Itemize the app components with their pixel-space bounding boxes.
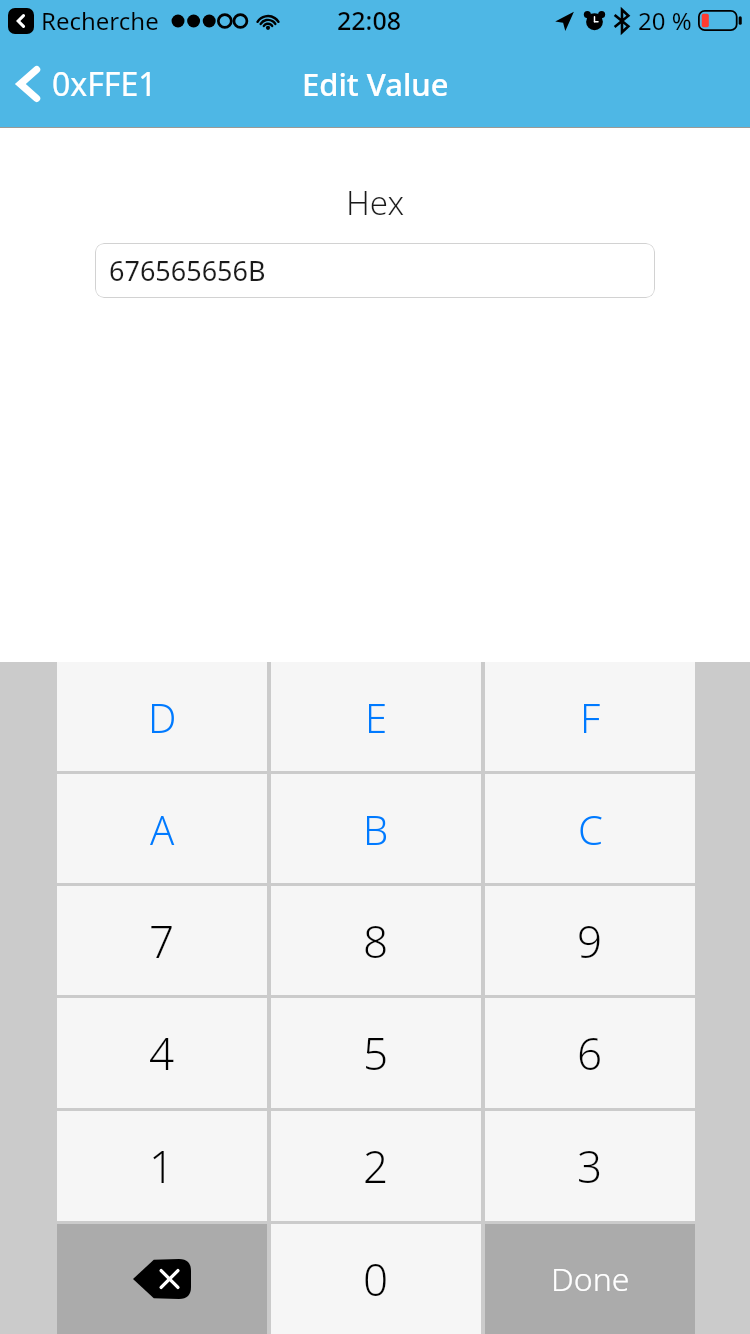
button[interactable]: 0 xyxy=(271,1224,481,1334)
staticText: 22:08 xyxy=(337,3,402,37)
staticText: 4 xyxy=(149,1023,175,1083)
button[interactable]: 5 xyxy=(271,998,481,1108)
button[interactable]: 6 xyxy=(485,998,695,1108)
staticText: 2 xyxy=(363,1136,389,1196)
button[interactable]: 9 xyxy=(485,886,695,995)
staticText: 1 xyxy=(149,1136,175,1196)
button[interactable]: F xyxy=(485,662,695,771)
button[interactable]: Done xyxy=(485,1224,695,1334)
button[interactable]: D xyxy=(57,662,267,771)
staticText: 8 xyxy=(363,911,389,971)
staticText: 3 xyxy=(577,1136,603,1196)
staticText: 20 % xyxy=(638,4,692,37)
staticText: C xyxy=(578,802,603,856)
staticText: F xyxy=(580,690,601,744)
staticText: Recherche xyxy=(41,4,159,37)
staticText: 7 xyxy=(149,911,175,971)
staticText: E xyxy=(365,690,388,744)
staticText: 6 xyxy=(577,1023,603,1083)
button[interactable]: Backspace xyxy=(57,1224,267,1334)
button[interactable]: 3 xyxy=(485,1111,695,1221)
staticText: 5 xyxy=(363,1023,389,1083)
button[interactable]: 4 xyxy=(57,998,267,1108)
staticText: 9 xyxy=(577,911,603,971)
button[interactable]: E xyxy=(271,662,481,771)
button[interactable]: B xyxy=(271,774,481,883)
button[interactable]: C xyxy=(485,774,695,883)
staticText: A xyxy=(150,802,175,856)
staticText: B xyxy=(363,802,389,856)
button[interactable]: 8 xyxy=(271,886,481,995)
button[interactable]: A xyxy=(57,774,267,883)
staticText: Done xyxy=(551,1257,630,1301)
staticText: 0xFFE1 xyxy=(52,62,157,106)
button[interactable]: 7 xyxy=(57,886,267,995)
button[interactable]: 2 xyxy=(271,1111,481,1221)
button[interactable]: 676565656B xyxy=(95,243,655,298)
button[interactable]: 1 xyxy=(57,1111,267,1221)
staticText: Hex xyxy=(0,180,750,225)
staticText: Edit Value xyxy=(302,63,449,105)
staticText: D xyxy=(148,690,177,744)
button[interactable]: 0xFFE1 xyxy=(0,54,171,114)
staticText: 676565656B xyxy=(109,252,266,289)
staticText: 0 xyxy=(363,1249,389,1309)
